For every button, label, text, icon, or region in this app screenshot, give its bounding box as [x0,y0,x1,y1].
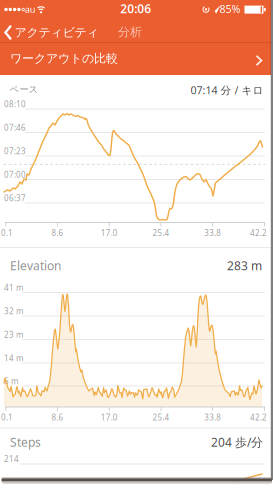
button[interactable]: ワークアウトの比較 [0,42,271,75]
staticText: 分析 [118,25,142,39]
staticText: ワークアウトの比較 [10,51,118,66]
staticText: 33.8 [204,228,221,238]
staticText: au [25,3,36,15]
staticText: 32 m [4,306,23,316]
staticText: 25.4 [152,412,169,423]
staticText: 17.0 [101,412,118,423]
staticText: 204 歩/分 [211,434,263,450]
staticText: 14 m [4,353,23,363]
staticText: 8.6 [52,228,64,238]
staticText: 214 [4,454,19,464]
staticText: 07:14 分 / キロ [190,83,263,97]
staticText: 17.0 [101,228,118,238]
staticText: 25.4 [152,228,169,238]
staticText: Steps [10,434,41,450]
staticText: 07:23 [4,146,26,156]
staticText: 23 m [4,329,23,340]
button[interactable]: 分析 [110,19,150,45]
staticText: 0.1 [1,228,13,238]
staticText: 20:06 [120,1,151,16]
staticText: 33.8 [204,412,221,423]
staticText: 42.2 [250,228,267,238]
staticText: 07:00 [4,169,26,180]
staticText: 06:37 [4,193,26,203]
staticText: 8.6 [52,412,64,423]
staticText: アクティビティ [14,25,98,40]
staticText: 07:46 [4,122,26,133]
staticText: 6 m [4,376,18,386]
staticText: Elevation [10,257,61,273]
staticText: ペース [9,84,38,95]
button[interactable]: アクティビティ [0,18,96,44]
staticText: 41 m [4,282,23,293]
staticText: 0.1 [1,412,13,423]
staticText: 08:10 [4,99,26,109]
staticText: 85% [219,2,240,16]
staticText: 283 m [227,257,262,273]
staticText: 42.2 [250,412,267,423]
